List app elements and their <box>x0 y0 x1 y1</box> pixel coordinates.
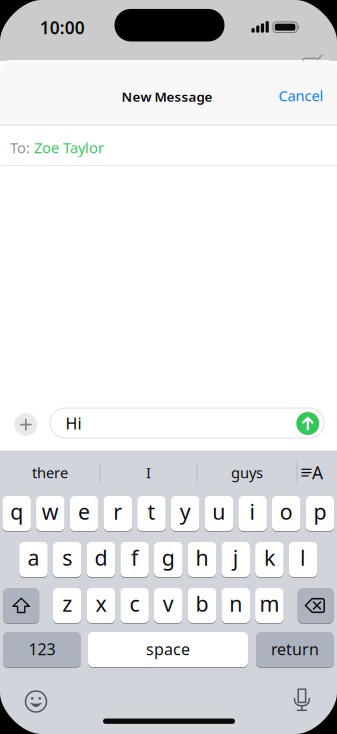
button[interactable]: e <box>70 495 98 531</box>
staticText: x <box>95 589 106 618</box>
button[interactable] <box>3 587 39 623</box>
staticText: c <box>130 589 140 618</box>
staticText: a <box>27 543 39 572</box>
button[interactable]: x <box>87 587 115 623</box>
staticText: r <box>113 497 122 526</box>
staticText: i <box>250 497 256 526</box>
button[interactable]: l <box>289 541 317 577</box>
button[interactable]: f <box>120 541 149 577</box>
staticText: return <box>271 638 319 660</box>
button[interactable]: Cancel <box>278 86 323 105</box>
staticText: s <box>62 543 72 572</box>
button[interactable] <box>23 688 49 714</box>
button[interactable]: guys <box>201 457 293 487</box>
staticText: To: <box>10 138 30 157</box>
button[interactable]: g <box>154 541 183 577</box>
button[interactable]: w <box>36 495 65 531</box>
button[interactable] <box>14 413 37 436</box>
staticText: o <box>280 497 293 526</box>
button[interactable]: t <box>137 495 166 531</box>
button[interactable] <box>298 587 334 623</box>
button[interactable] <box>290 685 314 715</box>
staticText: f <box>131 543 138 572</box>
button[interactable]: b <box>188 587 216 623</box>
button[interactable]: j <box>221 541 250 577</box>
button[interactable] <box>50 408 324 438</box>
button[interactable]: 123 <box>3 631 81 667</box>
staticText: t <box>147 497 155 526</box>
staticText: j <box>233 543 239 572</box>
button[interactable]: y <box>171 495 199 531</box>
button[interactable]: k <box>255 541 284 577</box>
staticText: u <box>212 497 225 526</box>
button[interactable]: m <box>255 587 284 623</box>
button[interactable]: v <box>154 587 183 623</box>
button[interactable]: z <box>53 587 81 623</box>
staticText: p <box>313 497 326 526</box>
staticText: m <box>259 589 279 618</box>
button[interactable]: A <box>291 457 331 487</box>
button[interactable]: To: <box>0 126 337 165</box>
button[interactable]: i <box>238 495 267 531</box>
staticText: k <box>264 543 275 572</box>
staticText: Zoe Taylor <box>34 138 104 157</box>
staticText: q <box>10 497 23 526</box>
staticText: b <box>195 589 208 618</box>
button[interactable]: r <box>103 495 132 531</box>
button[interactable]: I <box>103 457 193 487</box>
button[interactable]: c <box>120 587 149 623</box>
staticText: v <box>163 589 174 618</box>
staticText: A <box>312 461 323 484</box>
staticText: I <box>146 463 151 482</box>
button[interactable] <box>296 412 319 435</box>
staticText: l <box>300 543 306 572</box>
button[interactable]: n <box>221 587 250 623</box>
button[interactable]: a <box>19 541 48 577</box>
button[interactable]: u <box>205 495 233 531</box>
staticText: Cancel <box>278 86 323 105</box>
staticText: w <box>42 497 59 526</box>
staticText: New Message <box>121 88 212 105</box>
button[interactable]: return <box>256 631 334 667</box>
staticText: g <box>162 543 175 572</box>
button[interactable]: d <box>87 541 115 577</box>
staticText: guys <box>231 463 263 482</box>
staticText: there <box>32 463 68 482</box>
staticText: 123 <box>28 638 55 660</box>
button[interactable]: s <box>53 541 81 577</box>
button[interactable]: h <box>188 541 216 577</box>
staticText: Hi <box>65 413 81 434</box>
button[interactable]: q <box>2 495 31 531</box>
button[interactable]: o <box>272 495 300 531</box>
button[interactable]: there <box>4 457 96 487</box>
staticText: y <box>180 497 191 526</box>
staticText: e <box>78 497 90 526</box>
staticText: h <box>195 543 208 572</box>
staticText: space <box>146 638 190 660</box>
staticText: z <box>62 589 72 618</box>
staticText: d <box>94 543 107 572</box>
staticText: 10:00 <box>40 16 85 39</box>
button[interactable]: p <box>306 495 334 531</box>
staticText: n <box>229 589 242 618</box>
button[interactable]: space <box>88 631 248 667</box>
